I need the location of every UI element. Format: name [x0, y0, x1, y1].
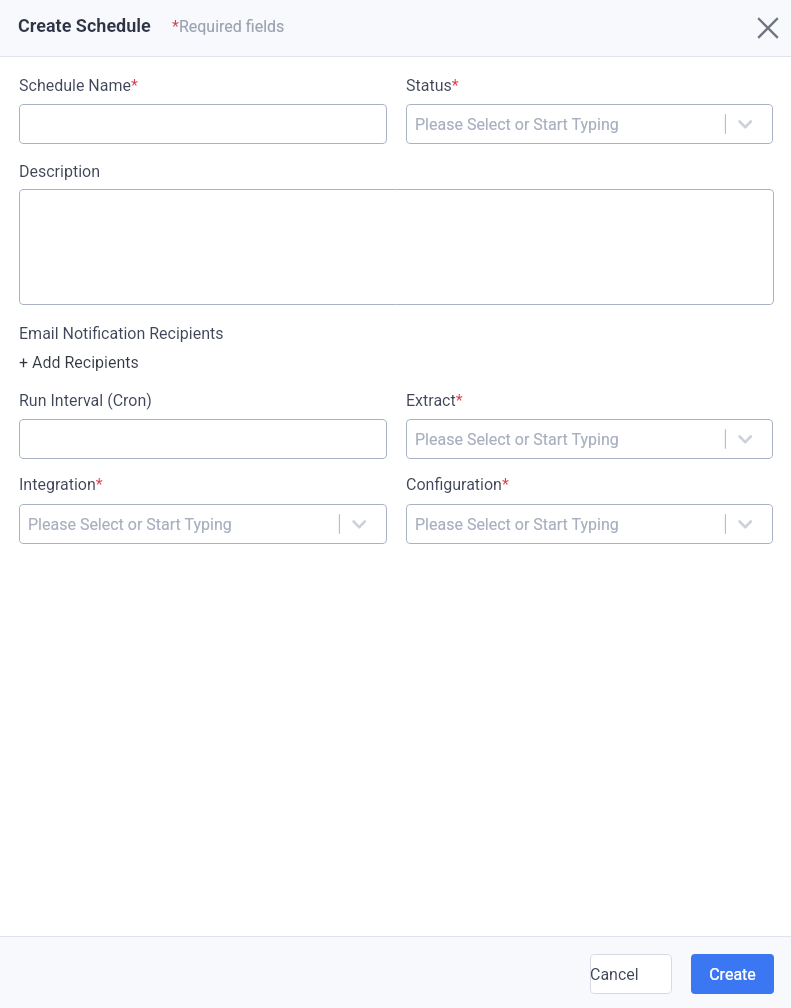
staticText: Please Select or Start Typing: [415, 430, 619, 449]
staticText: + Add Recipients: [19, 353, 139, 372]
button[interactable]: [19, 104, 387, 144]
staticText: Status*: [406, 76, 459, 95]
staticText: Run Interval (Cron): [19, 391, 152, 410]
staticText: Please Select or Start Typing: [415, 115, 619, 134]
staticText: Description: [19, 162, 100, 181]
staticText: Please Select or Start Typing: [28, 515, 232, 534]
button[interactable]: Please Select or Start Typing: [406, 504, 773, 544]
staticText: Email Notification Recipients: [19, 324, 224, 343]
staticText: Create Schedule: [18, 15, 151, 36]
button[interactable]: + Add Recipients: [18, 350, 142, 374]
staticText: Configuration*: [406, 475, 509, 494]
staticText: Cancel: [590, 965, 672, 984]
staticText: Please Select or Start Typing: [415, 515, 619, 534]
staticText: Extract*: [406, 391, 463, 410]
button[interactable]: Close: [746, 6, 790, 50]
staticText: Integration*: [19, 475, 103, 494]
staticText: Schedule Name*: [19, 76, 138, 95]
button[interactable]: Cancel: [590, 954, 672, 994]
button[interactable]: [19, 419, 387, 459]
staticText: *Required fields: [172, 17, 285, 36]
button[interactable]: Please Select or Start Typing: [19, 504, 387, 544]
button[interactable]: Please Select or Start Typing: [406, 419, 773, 459]
button[interactable]: [19, 189, 774, 305]
staticText: Create: [691, 965, 774, 984]
button[interactable]: Please Select or Start Typing: [406, 104, 773, 144]
button[interactable]: Create: [691, 954, 774, 994]
